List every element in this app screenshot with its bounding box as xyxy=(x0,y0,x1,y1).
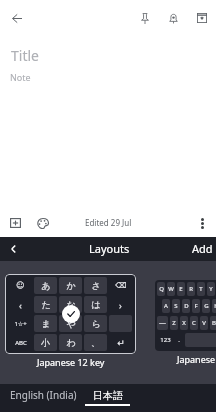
staticText: ⌫ xyxy=(115,281,127,290)
staticText: わ xyxy=(66,337,76,348)
button[interactable]: Archive xyxy=(190,6,214,30)
staticText: English (India) xyxy=(10,388,77,402)
staticText: — xyxy=(159,318,166,328)
staticText: Edited 29 Jul xyxy=(85,217,132,228)
staticText: 1☆+ xyxy=(14,320,27,328)
staticText: R xyxy=(189,285,193,293)
staticText: 日本語 xyxy=(93,389,123,402)
staticText: 、 xyxy=(91,337,100,348)
staticText: V xyxy=(202,319,206,327)
button[interactable]: Change colour xyxy=(32,212,54,234)
staticText: ‹ xyxy=(19,299,22,311)
staticText: Z xyxy=(172,319,176,327)
staticText: あ xyxy=(41,280,51,291)
staticText: G xyxy=(204,302,209,310)
staticText: ま xyxy=(41,318,51,329)
staticText: B xyxy=(212,319,216,327)
staticText: C xyxy=(192,319,196,327)
staticText: E xyxy=(179,285,183,293)
button[interactable]: English (India) xyxy=(6,384,80,406)
staticText: S xyxy=(174,302,178,310)
staticText: Layouts xyxy=(89,241,130,256)
staticText: A xyxy=(164,302,168,310)
staticText: な xyxy=(66,299,76,310)
button[interactable]: More options xyxy=(191,212,213,234)
staticText: Japanese Qwerty xyxy=(177,353,216,365)
staticText: › xyxy=(119,299,122,311)
staticText: は xyxy=(91,299,101,310)
button[interactable]: Back xyxy=(5,6,29,30)
staticText: ↵ xyxy=(117,338,125,348)
button[interactable]: Back xyxy=(0,237,26,261)
staticText: 小 xyxy=(41,337,50,348)
staticText: T xyxy=(199,285,203,293)
staticText: W xyxy=(168,285,174,293)
staticText: さ xyxy=(91,280,101,291)
button[interactable]: 日本語 xyxy=(85,384,130,412)
staticText: た xyxy=(41,299,51,310)
staticText: Add xyxy=(192,241,213,256)
staticText: 123 xyxy=(160,336,171,344)
staticText: ☺ xyxy=(16,281,25,290)
staticText: F xyxy=(194,302,198,310)
staticText: Title xyxy=(11,46,39,65)
staticText: Japanese 12 key xyxy=(37,356,105,368)
staticText: ABC xyxy=(15,339,27,347)
button[interactable]: Reminder xyxy=(161,6,185,30)
button[interactable]: Add xyxy=(188,237,216,261)
staticText: . xyxy=(178,336,180,344)
button[interactable]: Japanese Qwerty layout xyxy=(155,280,216,351)
staticText: や xyxy=(66,318,76,329)
button[interactable]: Add xyxy=(4,212,26,234)
staticText: ら xyxy=(91,318,101,329)
staticText: か xyxy=(66,280,76,291)
staticText: D xyxy=(184,302,189,310)
staticText: Note xyxy=(10,71,31,83)
staticText: H xyxy=(214,302,216,310)
staticText: Y xyxy=(209,285,213,293)
button[interactable]: Japanese 12 key layout xyxy=(5,274,136,354)
staticText: X xyxy=(182,319,186,327)
button[interactable]: Pin note xyxy=(133,6,157,30)
staticText: Q xyxy=(159,285,164,293)
